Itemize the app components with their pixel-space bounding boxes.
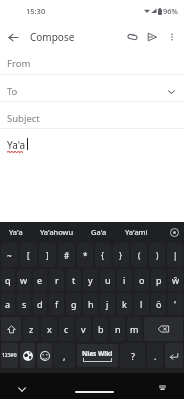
staticText: p — [156, 274, 162, 286]
staticText: Nias Wiki — [82, 349, 113, 358]
staticText: h — [88, 298, 94, 310]
button[interactable]: ö — [151, 293, 166, 315]
staticText: r — [55, 274, 59, 286]
button[interactable]: . — [147, 343, 163, 368]
button[interactable]: } — [113, 243, 129, 267]
staticText: c — [64, 323, 69, 335]
staticText: 123#0 — [2, 352, 17, 359]
staticText: , — [63, 350, 66, 362]
button[interactable]: x — [41, 317, 57, 341]
button[interactable]: u — [100, 269, 115, 291]
button[interactable]: ] — [39, 243, 56, 267]
button[interactable]: Back — [1, 25, 25, 49]
button[interactable]: i — [117, 269, 132, 291]
staticText: l — [140, 298, 143, 310]
staticText: i — [123, 274, 126, 286]
button[interactable]: b — [93, 317, 108, 341]
button[interactable]: ) — [149, 243, 165, 267]
button[interactable]: Attach file — [123, 27, 142, 47]
button[interactable]: ŵ — [168, 269, 183, 291]
button[interactable]: ? — [120, 343, 145, 368]
button[interactable]: c — [59, 317, 74, 341]
staticText: ö — [156, 298, 162, 310]
staticText: Ya'a — [9, 227, 23, 237]
staticText: ? — [131, 350, 135, 362]
staticText: ( — [138, 250, 141, 261]
staticText: 15:30 — [26, 6, 46, 16]
staticText: Ya'ahowu — [40, 227, 74, 237]
button[interactable]: Emoji — [37, 343, 52, 368]
button[interactable]: v — [76, 317, 91, 341]
staticText: ŵ — [172, 274, 180, 286]
button[interactable]: q — [1, 269, 15, 291]
button[interactable]: ' — [168, 293, 183, 315]
staticText: To — [7, 85, 18, 98]
staticText: f — [55, 298, 59, 310]
staticText: t — [72, 274, 76, 286]
staticText: v — [81, 323, 86, 335]
button[interactable]: Ya'a — [0, 222, 32, 242]
button[interactable]: # — [58, 243, 75, 267]
button[interactable]: w — [17, 269, 31, 291]
button[interactable]: z — [23, 317, 39, 341]
button[interactable]: f — [49, 293, 64, 315]
staticText: ) — [156, 250, 159, 261]
staticText: x — [47, 323, 52, 335]
staticText: ' — [174, 298, 177, 310]
staticText: b — [98, 323, 104, 335]
button[interactable]: l — [134, 293, 149, 315]
button[interactable]: p — [151, 269, 166, 291]
staticText: * — [83, 250, 88, 261]
button[interactable]: Switch keyboard — [152, 379, 172, 395]
button[interactable]: ( — [131, 243, 147, 267]
button[interactable]: j — [100, 293, 115, 315]
button[interactable]: r — [49, 269, 64, 291]
staticText: u — [105, 274, 111, 286]
staticText: From — [7, 57, 31, 70]
staticText: [ — [27, 250, 30, 261]
button[interactable]: a — [1, 293, 15, 315]
staticText: Ya'a — [7, 138, 26, 152]
button[interactable]: d — [33, 293, 47, 315]
button[interactable]: e — [33, 269, 47, 291]
button[interactable]: Enter — [165, 343, 183, 368]
button[interactable]: h — [83, 293, 98, 315]
button[interactable]: , — [54, 343, 75, 368]
button[interactable]: Symbols — [1, 343, 18, 368]
staticText: z — [29, 323, 34, 335]
button[interactable]: Hide keyboard — [12, 379, 32, 399]
button[interactable]: Keyboard settings — [164, 222, 184, 242]
button[interactable]: y — [83, 269, 98, 291]
button[interactable]: Change language — [20, 343, 35, 368]
button[interactable]: g — [66, 293, 81, 315]
button[interactable]: { — [95, 243, 111, 267]
button[interactable]: o — [134, 269, 149, 291]
button[interactable]: Space — [77, 344, 118, 367]
button[interactable]: t — [66, 269, 81, 291]
button[interactable]: Home — [70, 386, 118, 398]
staticText: m — [130, 323, 139, 335]
button[interactable]: Backspace — [144, 317, 183, 341]
button[interactable]: n — [110, 317, 125, 341]
button[interactable]: ~ — [1, 243, 18, 267]
button[interactable]: * — [77, 243, 93, 267]
button[interactable]: More options — [162, 27, 181, 47]
staticText: | — [173, 250, 178, 261]
button[interactable]: Shift — [1, 317, 21, 341]
staticText: e — [37, 274, 43, 286]
staticText: k — [122, 298, 127, 310]
staticText: a — [5, 298, 11, 310]
button[interactable]: s — [17, 293, 31, 315]
button[interactable]: Ga'a — [82, 222, 115, 242]
button[interactable]: | — [167, 243, 183, 267]
staticText: ~ — [7, 250, 12, 261]
button[interactable]: [ — [20, 243, 37, 267]
button[interactable]: k — [117, 293, 132, 315]
staticText: g — [71, 298, 77, 310]
button[interactable]: Ya'ahowu — [32, 222, 82, 242]
staticText: { — [101, 250, 105, 261]
button[interactable]: Ya'ami — [115, 222, 158, 242]
staticText: j — [106, 298, 109, 310]
button[interactable]: m — [127, 317, 142, 341]
button[interactable]: Send — [142, 27, 162, 47]
